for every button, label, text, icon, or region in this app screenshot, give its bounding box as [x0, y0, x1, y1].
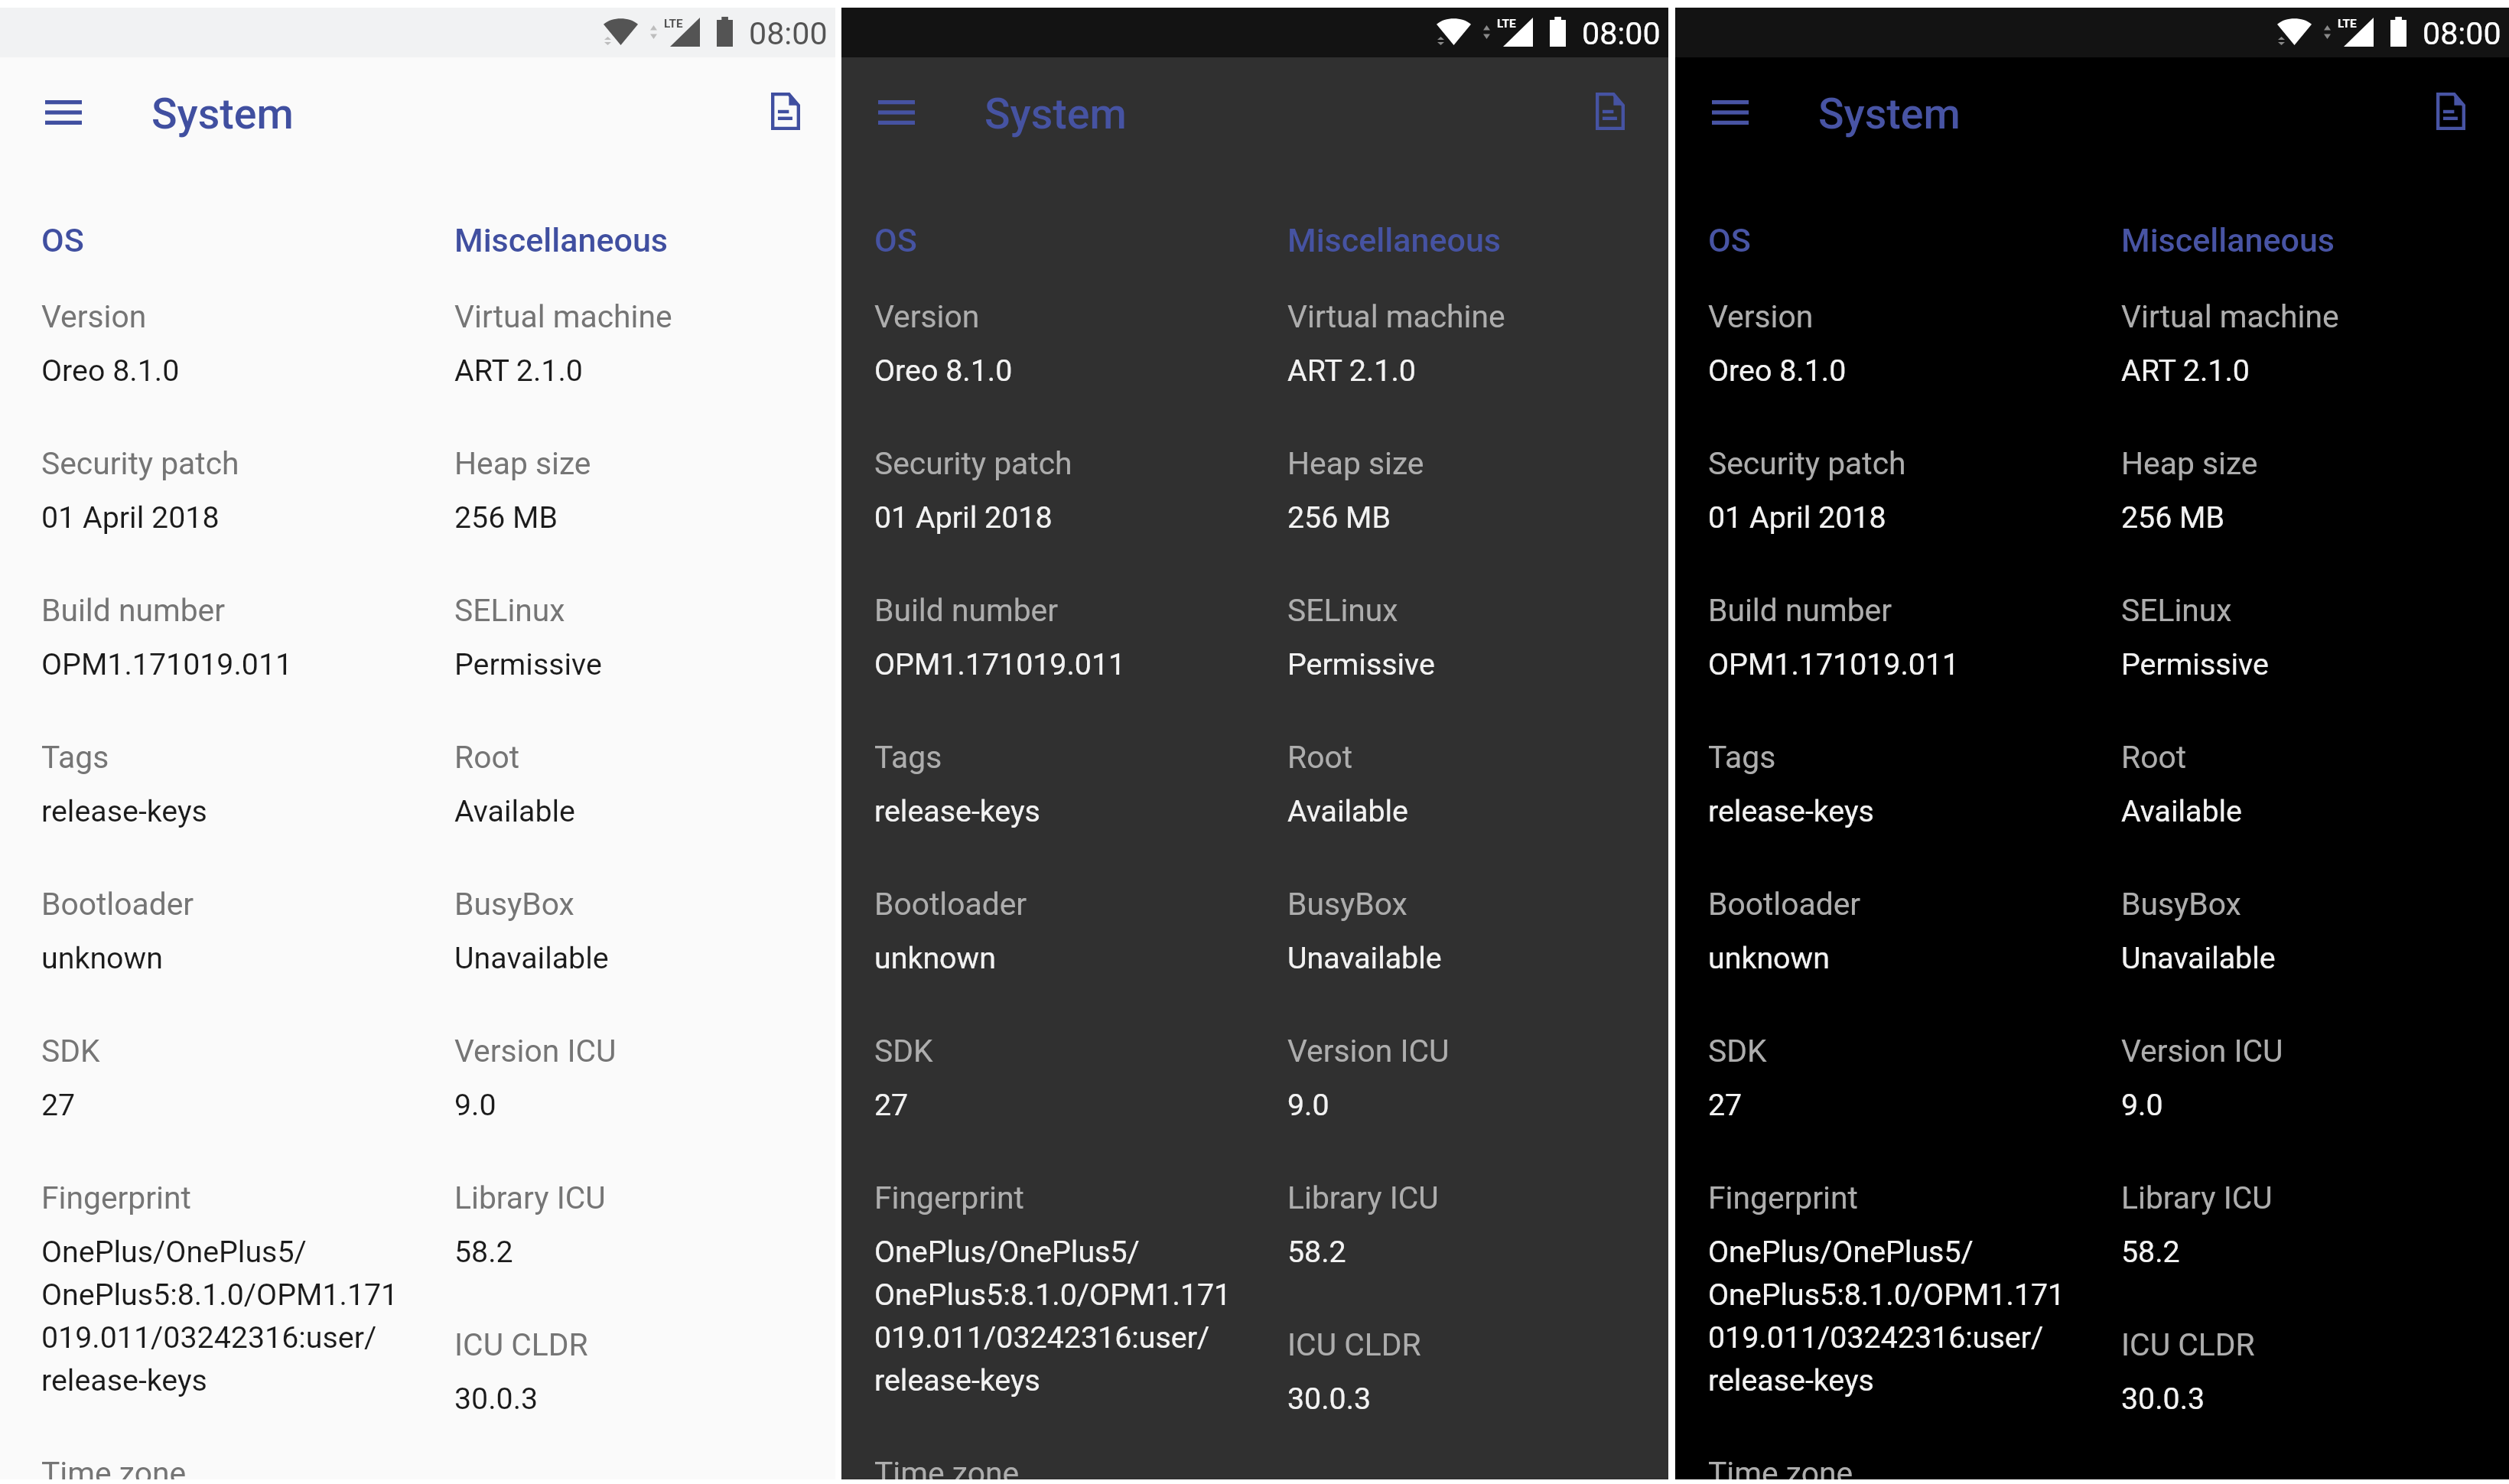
staticText: 27: [41, 1082, 76, 1124]
staticText: Miscellaneous: [454, 218, 668, 261]
button[interactable]: Virtual machine: [454, 294, 672, 390]
button[interactable]: ICU CLDR: [2121, 1322, 2255, 1418]
button[interactable]: Version ICU: [1287, 1028, 1450, 1124]
button[interactable]: Time zone: [1708, 1450, 1890, 1479]
staticText: Version ICU: [2121, 1028, 2283, 1071]
staticText: Permissive: [2121, 641, 2269, 684]
button[interactable]: Time zone: [41, 1450, 223, 1479]
staticText: 019.011/03242316:user/: [874, 1314, 1210, 1357]
staticText: 30.0.3: [454, 1375, 539, 1418]
button[interactable]: Fingerprint: [874, 1175, 1232, 1400]
staticText: Fingerprint: [41, 1175, 191, 1218]
button[interactable]: Root: [1287, 734, 1408, 831]
staticText: Library ICU: [2121, 1175, 2273, 1218]
staticText: Heap size: [454, 441, 591, 483]
staticText: Build number: [874, 587, 1059, 630]
button[interactable]: SDK: [1708, 1028, 1767, 1124]
button[interactable]: Library ICU: [2121, 1175, 2273, 1271]
staticText: 58.2: [2121, 1229, 2180, 1271]
button[interactable]: Export system report: [747, 73, 825, 151]
button[interactable]: ICU CLDR: [1287, 1322, 1421, 1418]
staticText: Oreo 8.1.0: [1708, 347, 1847, 390]
button[interactable]: SDK: [874, 1028, 933, 1124]
staticText: 019.011/03242316:user/: [1708, 1314, 2044, 1357]
button[interactable]: Heap size: [1287, 441, 1424, 537]
button[interactable]: Bootloader: [874, 881, 1027, 978]
button[interactable]: ICU CLDR: [454, 1322, 588, 1418]
button[interactable]: BusyBox: [454, 881, 609, 978]
button[interactable]: Root: [2121, 734, 2242, 831]
staticText: Virtual machine: [1287, 294, 1505, 337]
button[interactable]: Security patch: [41, 441, 239, 537]
button[interactable]: Virtual machine: [2121, 294, 2339, 390]
staticText: SELinux: [1287, 587, 1398, 630]
staticText: Root: [454, 734, 520, 777]
button[interactable]: Time zone: [874, 1450, 1056, 1479]
staticText: OS: [1708, 218, 1751, 261]
button[interactable]: Version: [1708, 294, 1847, 390]
staticText: System: [151, 89, 294, 139]
button[interactable]: Open navigation drawer: [24, 73, 103, 151]
button[interactable]: Build number: [41, 587, 293, 684]
button[interactable]: Root: [454, 734, 575, 831]
staticText: unknown: [41, 935, 163, 978]
button[interactable]: Library ICU: [454, 1175, 606, 1271]
button[interactable]: Version: [41, 294, 180, 390]
staticText: Build number: [1708, 587, 1892, 630]
button[interactable]: BusyBox: [2121, 881, 2276, 978]
button[interactable]: Open navigation drawer: [857, 73, 936, 151]
button[interactable]: Export system report: [1571, 73, 1649, 151]
button[interactable]: SDK: [41, 1028, 100, 1124]
staticText: 256 MB: [1287, 494, 1391, 537]
button[interactable]: Export system report: [2412, 73, 2490, 151]
staticText: Unavailable: [1287, 935, 1442, 978]
button[interactable]: Version ICU: [454, 1028, 617, 1124]
button[interactable]: Tags: [41, 734, 207, 831]
staticText: Security patch: [1708, 441, 1906, 483]
staticText: Virtual machine: [2121, 294, 2339, 337]
staticText: 9.0: [1287, 1082, 1329, 1124]
button[interactable]: Heap size: [454, 441, 591, 537]
button[interactable]: BusyBox: [1287, 881, 1442, 978]
staticText: Time zone: [41, 1450, 187, 1479]
button[interactable]: Virtual machine: [1287, 294, 1505, 390]
staticText: Bootloader: [41, 881, 194, 924]
button[interactable]: Version: [874, 294, 1013, 390]
button[interactable]: Bootloader: [41, 881, 194, 978]
button[interactable]: Security patch: [874, 441, 1072, 537]
staticText: OPM1.171019.011: [874, 641, 1126, 684]
button[interactable]: SELinux: [1287, 587, 1435, 684]
button[interactable]: Heap size: [2121, 441, 2258, 537]
button[interactable]: Tags: [1708, 734, 1874, 831]
staticText: Version: [1708, 294, 1814, 337]
staticText: Version: [874, 294, 980, 337]
staticText: release-keys: [41, 788, 207, 831]
staticText: Time zone: [874, 1450, 1020, 1479]
button[interactable]: SELinux: [2121, 587, 2269, 684]
button[interactable]: Library ICU: [1287, 1175, 1439, 1271]
staticText: 27: [1708, 1082, 1743, 1124]
button[interactable]: Tags: [874, 734, 1040, 831]
button[interactable]: Version ICU: [2121, 1028, 2283, 1124]
staticText: ART 2.1.0: [454, 347, 583, 390]
staticText: OnePlus5:8.1.0/OPM1.171: [874, 1271, 1232, 1314]
button[interactable]: SELinux: [454, 587, 602, 684]
staticText: Unavailable: [454, 935, 609, 978]
staticText: Oreo 8.1.0: [41, 347, 180, 390]
button[interactable]: Fingerprint: [1708, 1175, 2065, 1400]
staticText: unknown: [874, 935, 996, 978]
staticText: release-keys: [874, 1357, 1040, 1400]
staticText: SDK: [1708, 1028, 1767, 1071]
staticText: Library ICU: [454, 1175, 606, 1218]
staticText: Available: [2121, 788, 2242, 831]
staticText: LTE: [2338, 17, 2357, 31]
button[interactable]: Build number: [1708, 587, 1960, 684]
button[interactable]: Bootloader: [1708, 881, 1861, 978]
button[interactable]: Open navigation drawer: [1691, 73, 1769, 151]
staticText: Version: [41, 294, 147, 337]
staticText: Miscellaneous: [2121, 218, 2335, 261]
staticText: 019.011/03242316:user/: [41, 1314, 377, 1357]
button[interactable]: Build number: [874, 587, 1126, 684]
button[interactable]: Fingerprint: [41, 1175, 399, 1400]
button[interactable]: Security patch: [1708, 441, 1906, 537]
